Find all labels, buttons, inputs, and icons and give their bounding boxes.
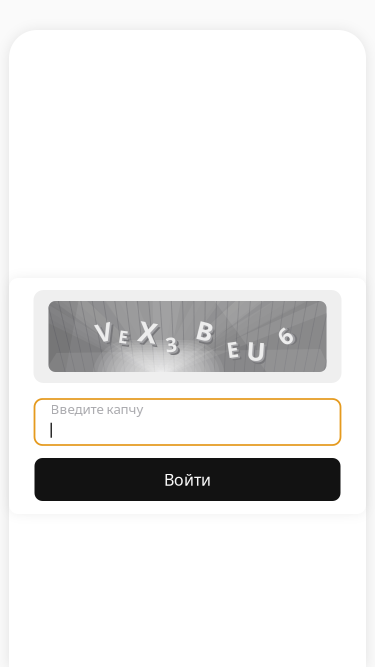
staticText: V — [95, 315, 111, 349]
staticText: X — [140, 314, 159, 352]
staticText: 6 — [278, 321, 291, 351]
button[interactable]: Введите капчу — [34, 399, 340, 445]
staticText: U — [249, 337, 268, 371]
staticText: B — [199, 317, 216, 351]
staticText: Войти — [164, 469, 211, 490]
staticText: U — [246, 334, 265, 368]
staticText: 6 — [281, 324, 294, 354]
staticText: 3 — [168, 334, 179, 361]
staticText: B — [196, 314, 213, 348]
staticText: X — [138, 313, 157, 350]
staticText: 3 — [167, 332, 178, 359]
staticText: E — [121, 328, 131, 351]
staticText: E — [229, 338, 241, 366]
staticText: Введите капчу — [50, 400, 143, 418]
staticText: E — [120, 326, 130, 349]
button[interactable]: Войти — [34, 458, 340, 501]
staticText: 6 — [280, 322, 293, 353]
staticText: V — [98, 318, 114, 352]
staticText: V — [97, 316, 113, 350]
staticText: B — [198, 315, 215, 349]
staticText: U — [248, 335, 267, 369]
staticText: E — [228, 336, 240, 365]
staticText: 3 — [165, 331, 176, 358]
staticText: E — [118, 325, 128, 348]
staticText: X — [141, 316, 160, 353]
staticText: E — [226, 335, 238, 363]
